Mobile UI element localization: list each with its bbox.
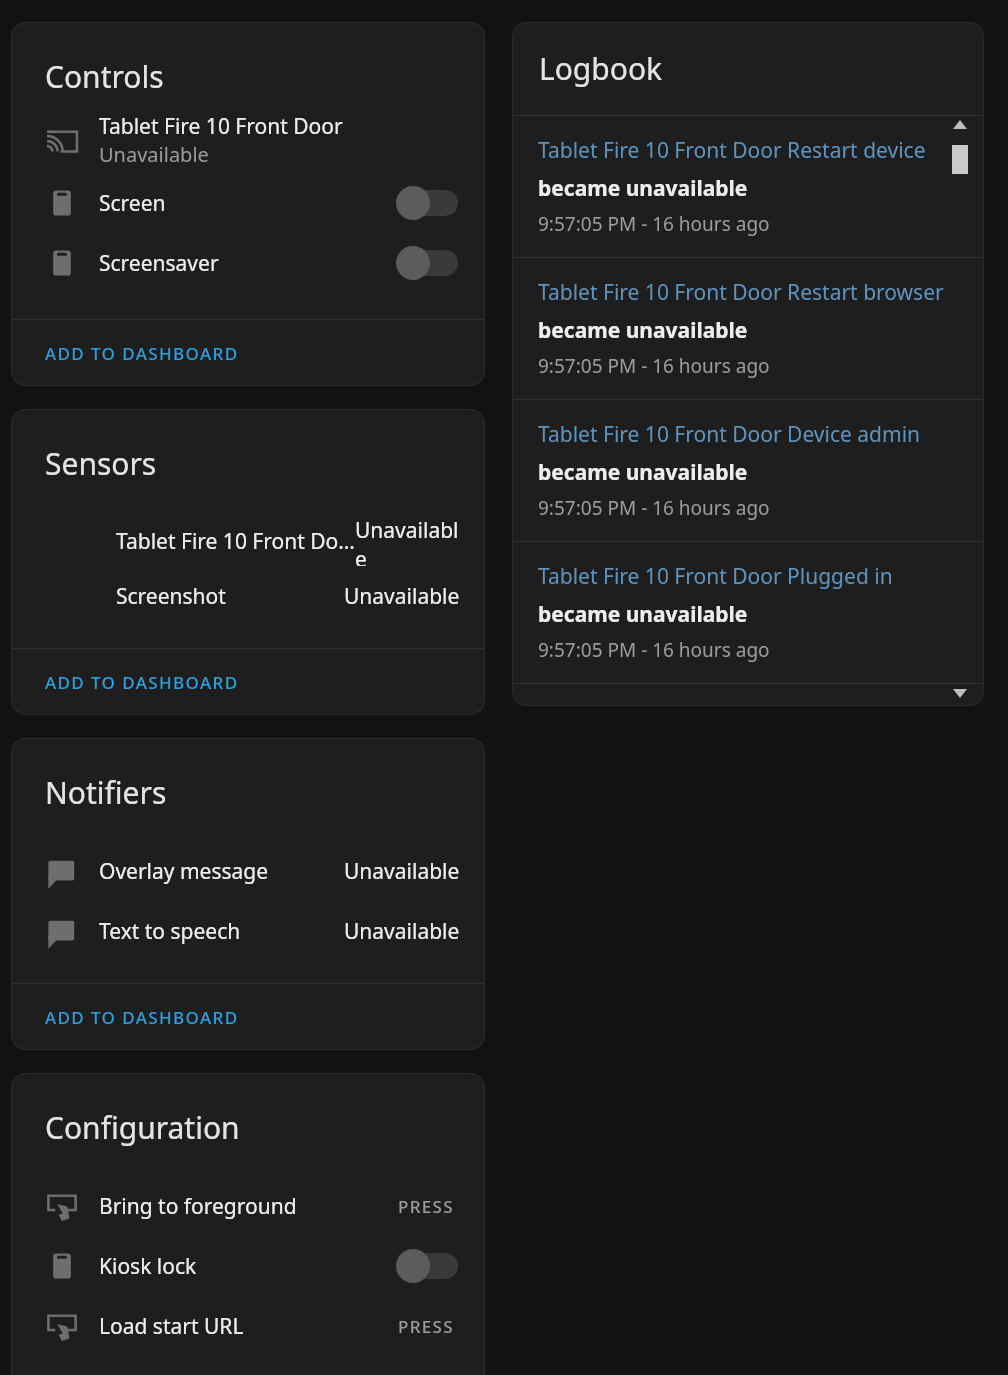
staticText: 9:57:05 PM - 16 hours ago bbox=[538, 495, 770, 521]
staticText: Configuration bbox=[45, 1107, 240, 1148]
staticText: Overlay message bbox=[99, 857, 269, 886]
staticText: became unavailable bbox=[538, 458, 748, 487]
staticText: Sensors bbox=[45, 443, 157, 484]
button[interactable]: Tablet Fire 10 Front Door Restart device bbox=[512, 116, 984, 258]
button[interactable]: Screenshot bbox=[11, 566, 485, 626]
staticText: Screensaver bbox=[99, 249, 396, 278]
staticText: Tablet Fire 10 Front Door Plugged in bbox=[538, 562, 893, 591]
staticText: Unavailable bbox=[344, 857, 460, 886]
staticText: Tablet Fire 10 Front Door Restart browse… bbox=[538, 278, 944, 307]
button[interactable]: ADD TO DASHBOARD bbox=[11, 984, 485, 1050]
staticText: 9:57:05 PM - 16 hours ago bbox=[538, 353, 770, 379]
staticText: ADD TO DASHBOARD bbox=[45, 671, 239, 694]
staticText: ADD TO DASHBOARD bbox=[45, 342, 239, 365]
staticText: 9:57:05 PM - 16 hours ago bbox=[538, 211, 770, 237]
button[interactable]: Tablet Fire 10 Front Door Plugged in bbox=[512, 542, 984, 684]
staticText: became unavailable bbox=[538, 600, 748, 629]
button[interactable]: Overlay message bbox=[11, 841, 485, 901]
staticText: Unavailable bbox=[355, 516, 460, 566]
staticText: Load start URL bbox=[99, 1312, 244, 1341]
staticText: PRESS bbox=[398, 1315, 454, 1338]
button[interactable]: Bring to foreground bbox=[11, 1176, 485, 1236]
button[interactable]: Tablet Fire 10 Front Door Device admin bbox=[512, 400, 984, 542]
button[interactable]: Tablet Fire 10 Front Door bbox=[11, 107, 485, 173]
staticText: Tablet Fire 10 Front Door Kiosk mode bbox=[538, 704, 903, 706]
staticText: Screen bbox=[99, 189, 396, 218]
staticText: became unavailable bbox=[538, 174, 748, 203]
button[interactable]: Tablet Fire 10 Front Door Kiosk mode bbox=[512, 684, 984, 706]
button[interactable]: Tablet Fire 10 Front Door Restart browse… bbox=[512, 258, 984, 400]
staticText: Screenshot bbox=[116, 582, 226, 611]
staticText: Tablet Fire 10 Front Door Restart device bbox=[538, 136, 926, 165]
button[interactable]: ADD TO DASHBOARD bbox=[11, 649, 485, 715]
staticText: Bring to foreground bbox=[99, 1192, 297, 1221]
staticText: Tablet Fire 10 Front Door bbox=[99, 112, 343, 141]
staticText: Logbook bbox=[539, 48, 663, 89]
staticText: PRESS bbox=[398, 1195, 454, 1218]
button[interactable]: Tablet Fire 10 Front Do… bbox=[11, 516, 485, 566]
staticText: became unavailable bbox=[538, 316, 748, 345]
staticText: Notifiers bbox=[45, 772, 167, 813]
button[interactable]: Kiosk lock bbox=[11, 1236, 485, 1296]
staticText: Tablet Fire 10 Front Do… bbox=[116, 527, 355, 556]
staticText: Controls bbox=[45, 56, 164, 97]
button[interactable]: ADD TO DASHBOARD bbox=[11, 320, 485, 386]
staticText: Text to speech bbox=[99, 917, 241, 946]
staticText: 9:57:05 PM - 16 hours ago bbox=[538, 637, 770, 663]
staticText: ADD TO DASHBOARD bbox=[45, 1006, 239, 1029]
button[interactable]: Load start URL bbox=[11, 1296, 485, 1356]
button[interactable]: Screen bbox=[11, 173, 485, 233]
button[interactable]: Text to speech bbox=[11, 901, 485, 961]
staticText: Unavailable bbox=[99, 141, 209, 168]
staticText: Tablet Fire 10 Front Door Device admin bbox=[538, 420, 921, 449]
staticText: Unavailable bbox=[344, 917, 460, 946]
button[interactable]: Screensaver bbox=[11, 233, 485, 293]
staticText: Kiosk lock bbox=[99, 1252, 396, 1281]
staticText: Unavailable bbox=[344, 582, 460, 611]
